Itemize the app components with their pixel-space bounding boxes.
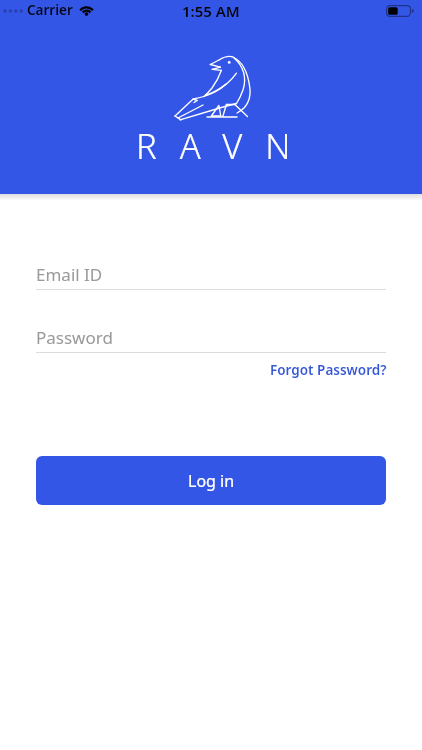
button[interactable]: Password (36, 322, 386, 353)
staticText: Carrier (27, 1, 73, 19)
staticText: Log in (188, 470, 235, 492)
staticText: 1:55 AM (182, 1, 240, 21)
staticText: RAVN (136, 122, 314, 169)
staticText: Email ID (36, 263, 103, 286)
button[interactable]: Log in (36, 456, 386, 505)
button[interactable]: Forgot Password? (270, 361, 387, 379)
staticText: Password (36, 326, 113, 349)
button[interactable]: Email ID (36, 259, 386, 290)
